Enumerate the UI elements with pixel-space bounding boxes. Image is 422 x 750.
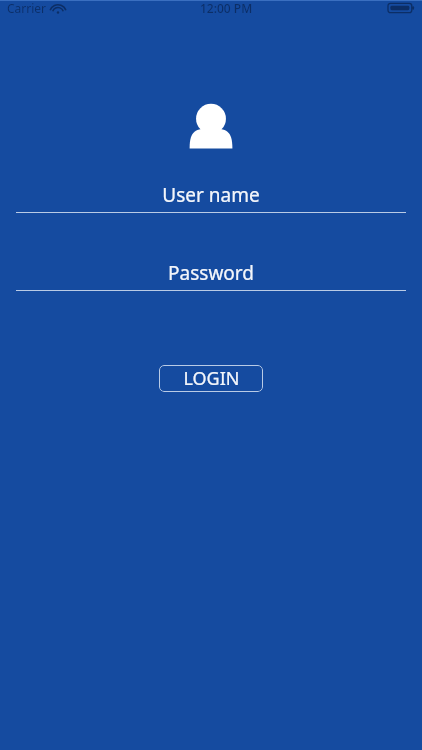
other: Battery full [388,2,415,14]
button[interactable]: Password [0,260,422,291]
staticText: LOGIN [183,366,240,391]
staticText: 12:00 PM [200,0,253,16]
button[interactable]: LOGIN [159,365,263,392]
other: User avatar [188,98,234,150]
staticText: Password [168,260,254,286]
other: Wi-Fi signal [51,3,65,14]
staticText: Carrier [7,0,47,16]
staticText: User name [162,182,260,208]
button[interactable]: User name [0,182,422,213]
